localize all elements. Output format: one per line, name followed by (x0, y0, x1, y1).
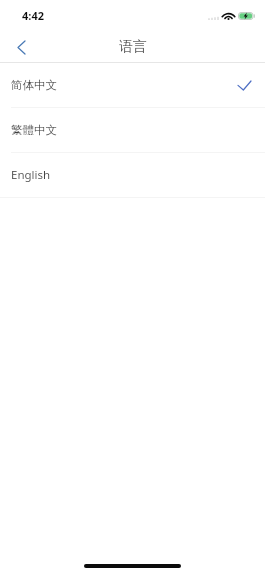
button[interactable]: English (0, 153, 265, 197)
staticText: 繁體中文 (11, 123, 57, 137)
staticText: 4:42 (22, 8, 44, 23)
staticText: 简体中文 (11, 78, 57, 92)
button[interactable]: 简体中文 (0, 63, 265, 107)
staticText: 语言 (119, 38, 147, 56)
staticText: English (11, 167, 51, 183)
button[interactable]: 繁體中文 (0, 108, 265, 152)
button[interactable]: Back (4, 29, 38, 63)
